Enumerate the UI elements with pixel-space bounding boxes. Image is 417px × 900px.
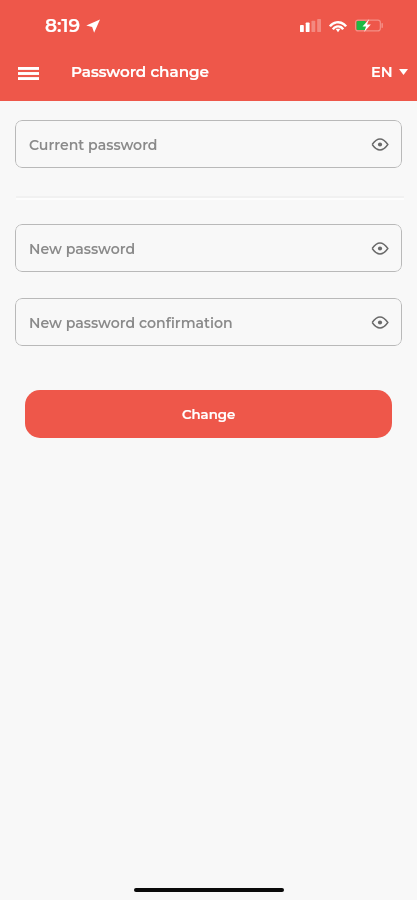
staticText: EN: [371, 63, 393, 81]
button[interactable]: Show password: [365, 129, 395, 159]
staticText: Current password: [29, 136, 158, 153]
staticText: New password confirmation: [29, 314, 233, 331]
staticText: 8:19: [45, 14, 80, 37]
button[interactable]: Change: [25, 390, 392, 438]
button[interactable]: New password: [15, 224, 402, 272]
button[interactable]: New password confirmation: [15, 298, 402, 346]
staticText: Password change: [71, 62, 209, 81]
button[interactable]: Show password: [365, 233, 395, 263]
button[interactable]: EN: [371, 63, 408, 81]
staticText: New password: [29, 240, 136, 257]
button[interactable]: Show password: [365, 307, 395, 337]
button[interactable]: Open navigation menu: [10, 55, 46, 91]
staticText: Change: [182, 406, 236, 422]
button[interactable]: Current password: [15, 120, 402, 168]
